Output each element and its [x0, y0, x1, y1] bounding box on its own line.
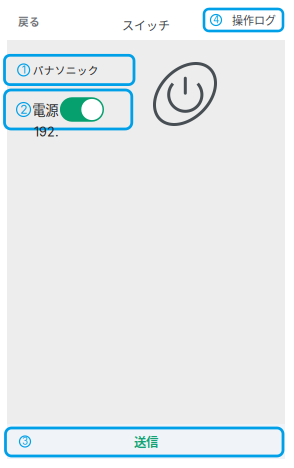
button[interactable]: 4	[204, 9, 283, 31]
staticText: 3	[22, 435, 28, 447]
staticText: 192.	[34, 124, 59, 140]
staticText: 1	[22, 63, 26, 76]
button[interactable]: 1	[4, 55, 134, 85]
staticText: パナソニック	[33, 62, 99, 78]
staticText: 電源	[32, 100, 58, 119]
staticText: 送信	[134, 432, 158, 450]
staticText: 戻る	[18, 13, 40, 29]
staticText: 操作ログ	[232, 12, 276, 28]
button[interactable]: 戻る	[18, 11, 58, 31]
staticText: スイッチ	[122, 16, 170, 34]
button[interactable]: 2	[4, 90, 132, 129]
staticText: 2	[20, 102, 27, 117]
staticText: 4	[213, 14, 219, 26]
button[interactable]: 送信	[7, 424, 285, 459]
